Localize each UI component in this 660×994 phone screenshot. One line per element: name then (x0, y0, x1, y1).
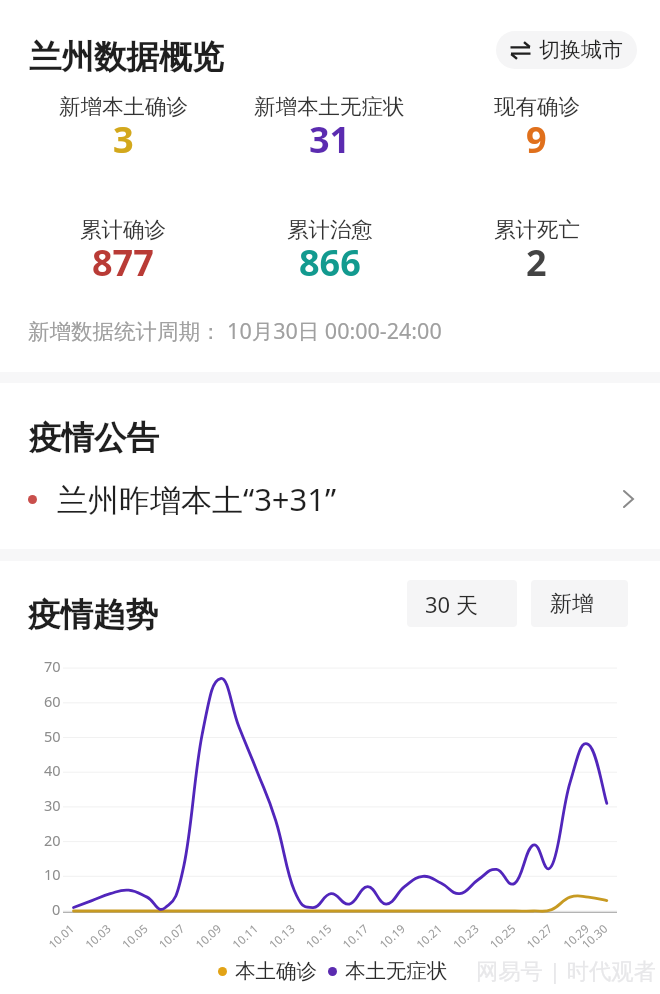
staticText: 本土确诊 (235, 958, 317, 984)
staticText: 30 天 (425, 589, 478, 619)
staticText: 新增数据统计周期： 10月30日 00:00-24:00 (28, 316, 442, 345)
button[interactable]: 30 天 (407, 580, 517, 627)
staticText: 现有确诊 (494, 93, 580, 120)
button[interactable]: 兰州昨增本土“3+31” (0, 472, 660, 526)
staticText: 累计治愈 (287, 216, 373, 243)
button[interactable]: 新增 (531, 580, 628, 627)
staticText: 2 (526, 238, 547, 287)
staticText: 9 (526, 115, 547, 164)
staticText: 20 (44, 830, 61, 850)
staticText: 疫情公告 (29, 418, 159, 459)
staticText: 新增本土确诊 (59, 93, 188, 120)
staticText: 网易号 | 时代观者 (476, 955, 656, 985)
staticText: 新增本土无症状 (254, 93, 405, 120)
staticText: 866 (299, 238, 361, 287)
staticText: 新增 (550, 590, 594, 618)
staticText: 10 (44, 864, 61, 884)
staticText: 70 (44, 656, 61, 676)
staticText: 切换城市 (539, 37, 623, 63)
staticText: 3 (113, 115, 134, 164)
staticText: 0 (52, 899, 61, 919)
staticText: 累计确诊 (80, 216, 166, 243)
staticText: 877 (92, 238, 154, 287)
staticText: 疫情趋势 (28, 595, 158, 636)
staticText: 50 (44, 726, 61, 746)
other: 查看详情 (623, 489, 635, 509)
staticText: 30 (44, 795, 61, 815)
button[interactable]: 切换城市 (496, 31, 637, 69)
staticText: 本土无症状 (345, 958, 448, 984)
staticText: 60 (44, 691, 61, 711)
other: 切换城市 (510, 44, 531, 57)
staticText: 兰州昨增本土“3+31” (57, 478, 337, 520)
staticText: 40 (44, 760, 61, 780)
staticText: 31 (309, 115, 351, 164)
staticText: 兰州数据概览 (29, 37, 224, 78)
staticText: 累计死亡 (494, 216, 580, 243)
